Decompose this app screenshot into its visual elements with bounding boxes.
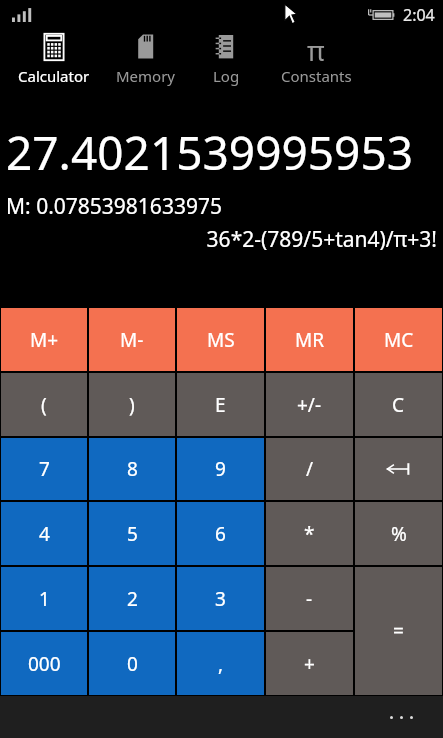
staticText: Constants [281, 66, 352, 86]
button[interactable]: 000 [1, 632, 87, 695]
button[interactable]: M+ [1, 308, 87, 371]
button[interactable]: 6 [177, 502, 264, 565]
staticText: 36*2-(789/5+tan4)/π+3! [6, 225, 437, 254]
button[interactable]: = [355, 567, 442, 695]
staticText: 2:04 [403, 4, 435, 26]
staticText: MR [295, 327, 325, 353]
staticText: ( [41, 392, 47, 418]
staticText: ) [129, 392, 135, 418]
button[interactable]: More options [0, 696, 443, 738]
staticText: 0 [127, 651, 138, 677]
button[interactable]: * [266, 502, 353, 565]
staticText: / [306, 456, 314, 482]
button[interactable]: , [177, 632, 264, 695]
staticText: 5 [127, 521, 138, 547]
staticText: 7 [39, 456, 50, 482]
staticText: , [218, 651, 224, 677]
button[interactable]: 8 [89, 438, 175, 500]
staticText: E [215, 392, 226, 418]
button[interactable]: Backspace [355, 438, 442, 500]
button[interactable]: MR [266, 308, 353, 371]
staticText: - [306, 586, 313, 612]
staticText: 6 [215, 521, 226, 547]
staticText: 27.4021539995953 [6, 121, 437, 184]
button[interactable]: / [266, 438, 353, 500]
staticText: +/- [297, 392, 322, 418]
button[interactable]: ) [89, 373, 175, 436]
button[interactable]: 2 [89, 567, 175, 630]
button[interactable]: 5 [89, 502, 175, 565]
staticText: M+ [30, 327, 59, 353]
staticText: 3 [215, 586, 226, 612]
button[interactable]: Calculator [6, 30, 101, 88]
staticText: M- [120, 327, 144, 353]
staticText: * [304, 521, 315, 547]
button[interactable]: 9 [177, 438, 264, 500]
staticText: 1 [39, 586, 50, 612]
button[interactable]: E [177, 373, 264, 436]
button[interactable]: MC [355, 308, 442, 371]
button[interactable]: MS [177, 308, 264, 371]
staticText: Memory [116, 66, 176, 86]
staticText: % [391, 521, 407, 547]
button[interactable]: 0 [89, 632, 175, 695]
button[interactable]: Memory [101, 30, 191, 88]
staticText: C [392, 392, 405, 418]
staticText: 000 [28, 651, 61, 677]
button[interactable]: M- [89, 308, 175, 371]
button[interactable]: π [261, 30, 371, 88]
button[interactable]: C [355, 373, 442, 436]
button[interactable]: Log [191, 30, 261, 88]
button[interactable]: +/- [266, 373, 353, 436]
staticText: 9 [215, 456, 226, 482]
staticText: MS [207, 327, 235, 353]
button[interactable]: % [355, 502, 442, 565]
button[interactable]: 4 [1, 502, 87, 565]
button[interactable]: 1 [1, 567, 87, 630]
button[interactable]: 7 [1, 438, 87, 500]
button[interactable]: - [266, 567, 353, 630]
button[interactable]: 3 [177, 567, 264, 630]
staticText: π [307, 32, 325, 62]
button[interactable]: + [266, 632, 353, 695]
staticText: + [304, 651, 315, 677]
staticText: MC [384, 327, 414, 353]
button[interactable]: ( [1, 373, 87, 436]
staticText: = [393, 618, 404, 644]
staticText: Log [213, 66, 240, 86]
staticText: M: 0.07853981633975 [6, 192, 222, 221]
staticText: 2 [127, 586, 138, 612]
staticText: Calculator [18, 66, 90, 86]
staticText: 8 [127, 456, 138, 482]
staticText: 4 [39, 521, 50, 547]
